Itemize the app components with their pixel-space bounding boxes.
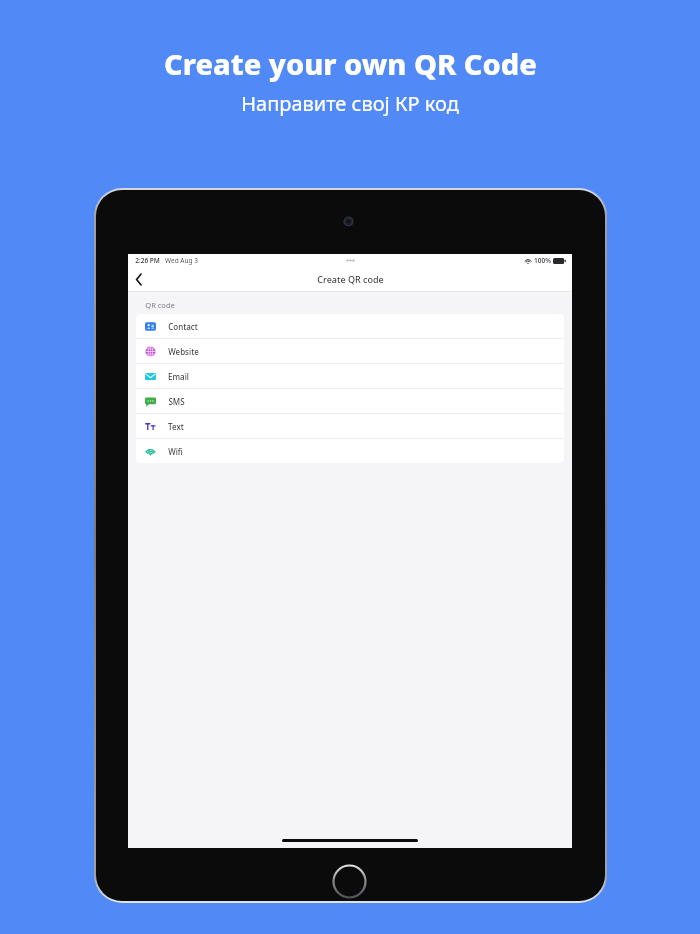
button[interactable]: Email bbox=[136, 364, 564, 388]
staticText: SMS bbox=[168, 396, 185, 407]
button[interactable]: Website bbox=[136, 339, 564, 363]
staticText: Text bbox=[168, 421, 184, 432]
staticText: Wed Aug 3 bbox=[165, 256, 198, 265]
button[interactable]: Wifi bbox=[136, 439, 564, 463]
button[interactable]: SMS bbox=[136, 389, 564, 413]
staticText: Website bbox=[168, 346, 199, 357]
staticText: Wifi bbox=[168, 446, 183, 457]
button[interactable]: Back bbox=[128, 268, 150, 290]
staticText: Create QR code bbox=[317, 273, 384, 285]
staticText: Направите свој КР код bbox=[241, 90, 459, 117]
button[interactable]: Contact bbox=[136, 314, 564, 338]
button[interactable]: Text bbox=[136, 414, 564, 438]
staticText: 100% bbox=[534, 256, 551, 265]
staticText: Email bbox=[168, 371, 189, 382]
staticText: Contact bbox=[168, 321, 198, 332]
staticText: Create your own QR Code bbox=[164, 44, 537, 83]
staticText: 2:26 PM bbox=[135, 256, 160, 265]
staticText: QR code bbox=[145, 300, 175, 310]
